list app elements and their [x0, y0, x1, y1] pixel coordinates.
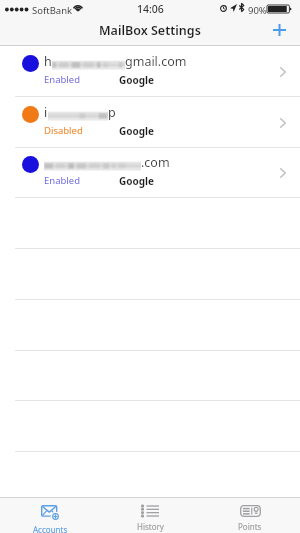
button[interactable]: Accounts: [0, 498, 100, 533]
staticText: i: [44, 104, 48, 121]
button[interactable]: i: [0, 97, 300, 148]
staticText: Google: [119, 174, 155, 188]
staticText: h: [44, 53, 52, 70]
staticText: p: [108, 104, 116, 121]
staticText: MailBox Settings: [99, 22, 201, 39]
staticText: Google: [119, 124, 155, 138]
button[interactable]: Points: [200, 498, 300, 533]
staticText: Disabled: [44, 124, 83, 137]
staticText: SoftBank: [32, 4, 73, 17]
button[interactable]: Add account: [263, 17, 296, 43]
staticText: Accounts: [33, 524, 68, 533]
staticText: Enabled: [44, 73, 80, 86]
staticText: Google: [119, 73, 155, 87]
button[interactable]: History: [100, 498, 200, 533]
staticText: 90%: [248, 4, 267, 17]
button[interactable]: .com: [0, 147, 300, 198]
staticText: Points: [238, 521, 262, 532]
staticText: .com: [141, 154, 170, 171]
button[interactable]: h: [0, 46, 300, 97]
staticText: gmail.com: [125, 53, 187, 70]
staticText: 14:06: [137, 2, 164, 16]
staticText: History: [137, 521, 164, 532]
staticText: Enabled: [44, 174, 80, 187]
